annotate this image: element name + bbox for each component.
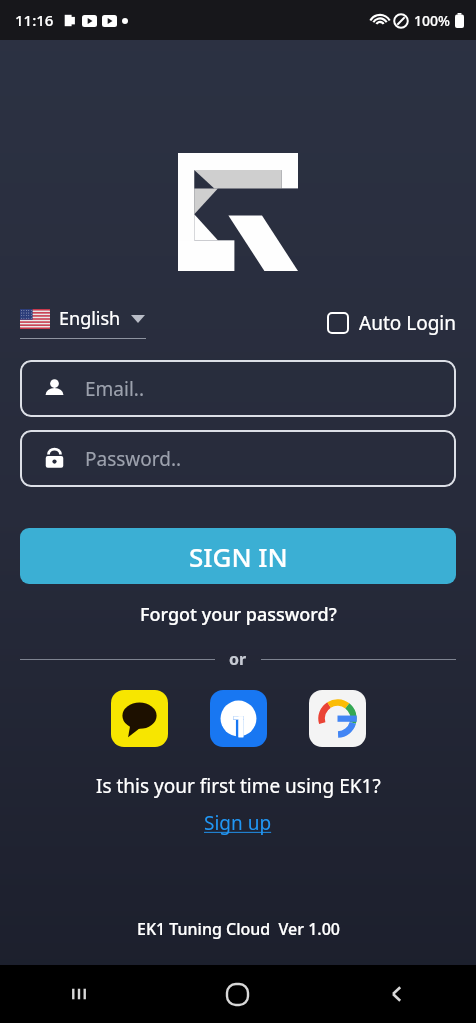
staticText: 100% xyxy=(414,11,450,30)
staticText: Sign up xyxy=(204,810,272,836)
button[interactable]: Sign in with Kakao xyxy=(111,690,168,747)
button[interactable]: Sign in with Google xyxy=(309,690,366,747)
button[interactable]: Auto Login xyxy=(327,310,456,336)
staticText: Auto Login xyxy=(359,310,456,336)
button[interactable]: Home xyxy=(158,965,317,1023)
button[interactable]: English xyxy=(20,306,146,339)
staticText: EK1 Tuning Cloud Ver 1.00 xyxy=(137,918,340,940)
staticText: Email.. xyxy=(85,376,144,402)
button[interactable]: Sign in with Facebook xyxy=(210,690,267,747)
staticText: Password.. xyxy=(85,446,182,472)
staticText: Forgot your password? xyxy=(140,602,337,627)
staticText: SIGN IN xyxy=(189,539,288,574)
button[interactable]: Sign up xyxy=(201,807,275,839)
staticText: Is this your first time using EK1? xyxy=(96,773,381,799)
button[interactable]: Password.. xyxy=(20,430,456,487)
button[interactable]: Email.. xyxy=(20,360,456,417)
staticText: English xyxy=(59,306,121,331)
staticText: 11:16 xyxy=(15,10,54,30)
button[interactable]: Back xyxy=(317,965,476,1023)
button[interactable]: Forgot your password? xyxy=(136,598,341,631)
button[interactable]: SIGN IN xyxy=(20,528,456,584)
other: EK1 logo xyxy=(178,153,298,271)
button[interactable]: Recent apps xyxy=(0,965,158,1023)
staticText: or xyxy=(229,648,247,670)
